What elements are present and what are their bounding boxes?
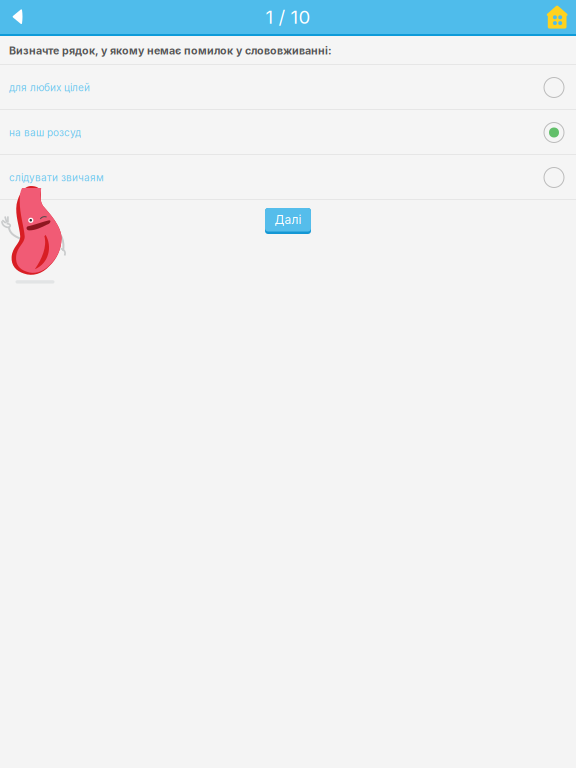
staticText: слідувати звичаям xyxy=(9,171,104,184)
button[interactable]: Далі xyxy=(265,208,311,234)
staticText: для любих цілей xyxy=(9,81,90,94)
button[interactable]: Home xyxy=(547,0,576,34)
button[interactable]: на ваш розсуд xyxy=(0,110,576,155)
staticText: 1 / 10 xyxy=(265,6,310,28)
button[interactable]: для любих цілей xyxy=(0,65,576,110)
staticText: Далі xyxy=(274,212,301,227)
staticText: Визначте рядок, у якому немає помилок у … xyxy=(9,44,332,57)
button[interactable]: слідувати звичаям xyxy=(0,155,576,200)
staticText: на ваш розсуд xyxy=(9,126,81,139)
button[interactable]: Back xyxy=(0,0,33,34)
